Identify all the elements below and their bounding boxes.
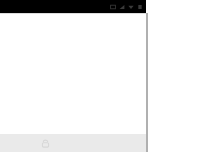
button[interactable]: Secure <box>36 134 54 152</box>
